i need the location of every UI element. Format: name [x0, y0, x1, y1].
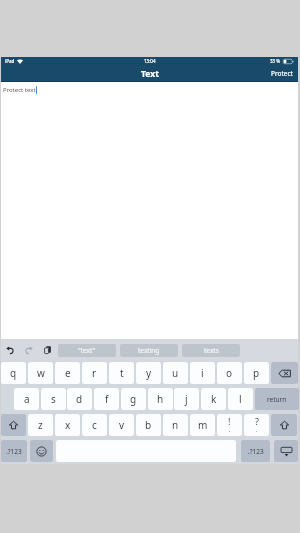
button[interactable]: Backspace: [271, 362, 298, 384]
staticText: Protect text: [3, 86, 36, 94]
button[interactable]: i: [190, 362, 215, 384]
staticText: t: [120, 366, 124, 380]
button[interactable]: p: [244, 362, 269, 384]
button[interactable]: k: [201, 388, 226, 410]
staticText: Protect: [271, 69, 293, 78]
button[interactable]: t: [109, 362, 134, 384]
button[interactable]: !: [217, 414, 242, 436]
staticText: ,: [229, 426, 231, 434]
staticText: 13:04: [144, 58, 156, 64]
staticText: Text: [141, 68, 159, 80]
button[interactable]: q: [1, 362, 26, 384]
staticText: iPad: [5, 58, 15, 64]
staticText: texting: [138, 346, 160, 355]
staticText: q: [10, 366, 17, 380]
button[interactable]: v: [109, 414, 134, 436]
staticText: w: [37, 366, 45, 380]
button[interactable]: h: [148, 388, 173, 410]
button[interactable]: m: [190, 414, 215, 436]
staticText: k: [211, 392, 217, 406]
button[interactable]: o: [217, 362, 242, 384]
button[interactable]: f: [94, 388, 119, 410]
staticText: n: [172, 418, 179, 432]
staticText: z: [38, 418, 43, 432]
button[interactable]: b: [136, 414, 161, 436]
staticText: d: [76, 392, 83, 406]
button[interactable]: w: [28, 362, 53, 384]
staticText: .?123: [6, 447, 22, 456]
button[interactable]: e: [55, 362, 80, 384]
button[interactable]: Shift: [271, 414, 297, 436]
staticText: .: [256, 426, 258, 434]
staticText: v: [119, 418, 125, 432]
staticText: 33 %: [270, 58, 281, 64]
staticText: u: [172, 366, 179, 380]
staticText: i: [201, 366, 204, 380]
staticText: s: [51, 392, 56, 406]
staticText: o: [226, 366, 233, 380]
staticText: a: [24, 392, 30, 406]
staticText: b: [145, 418, 152, 432]
button[interactable]: a: [14, 388, 39, 410]
staticText: e: [65, 366, 71, 380]
staticText: m: [198, 418, 208, 432]
button[interactable]: texting: [120, 344, 178, 357]
button[interactable]: Shift: [1, 414, 26, 436]
button[interactable]: x: [55, 414, 80, 436]
button[interactable]: Protect: [266, 65, 298, 82]
button[interactable]: .?123: [1, 440, 27, 462]
staticText: r: [92, 366, 97, 380]
button[interactable]: Emoji: [30, 440, 53, 462]
button[interactable]: c: [82, 414, 107, 436]
staticText: y: [146, 366, 152, 380]
button[interactable]: z: [28, 414, 53, 436]
staticText: h: [157, 392, 164, 406]
staticText: !: [228, 415, 231, 427]
button[interactable]: Redo: [21, 339, 37, 361]
button[interactable]: d: [67, 388, 92, 410]
button[interactable]: return: [255, 388, 299, 410]
button[interactable]: s: [41, 388, 66, 410]
button[interactable]: Hide keyboard: [274, 440, 298, 462]
button[interactable]: ?: [244, 414, 269, 436]
button[interactable]: l: [228, 388, 253, 410]
staticText: j: [185, 392, 188, 406]
button[interactable]: u: [163, 362, 188, 384]
staticText: texts: [204, 346, 219, 355]
button[interactable]: "text": [58, 344, 116, 357]
staticText: "text": [78, 346, 96, 355]
staticText: c: [92, 418, 97, 432]
button[interactable]: r: [82, 362, 107, 384]
button[interactable]: Paste: [39, 339, 55, 361]
staticText: .?123: [248, 447, 264, 456]
button[interactable]: Undo: [2, 339, 18, 361]
staticText: g: [130, 392, 137, 406]
staticText: f: [105, 392, 109, 406]
staticText: return: [267, 395, 287, 404]
staticText: x: [65, 418, 71, 432]
button[interactable]: j: [174, 388, 199, 410]
button[interactable]: .?123: [241, 440, 270, 462]
button[interactable]: texts: [182, 344, 240, 357]
button[interactable]: n: [163, 414, 188, 436]
staticText: ?: [255, 415, 259, 427]
staticText: p: [253, 366, 260, 380]
button[interactable]: g: [121, 388, 146, 410]
staticText: l: [239, 392, 242, 406]
button[interactable]: y: [136, 362, 161, 384]
